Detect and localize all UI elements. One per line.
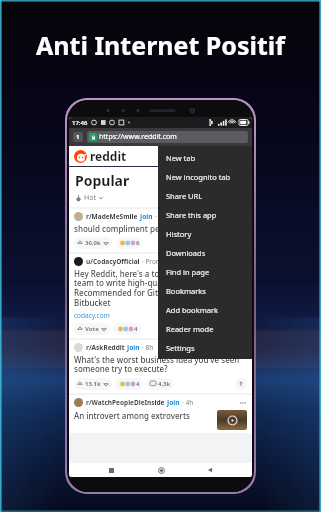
button[interactable]: Share <box>235 378 247 390</box>
button[interactable]: Vote <box>74 323 110 335</box>
staticText: 6 <box>136 239 140 247</box>
button[interactable]: Back <box>203 463 217 477</box>
staticText: r/MadeMeSmile <box>86 212 138 221</box>
staticText: should compliment people more <box>74 223 199 234</box>
button[interactable]: Downloads <box>158 243 252 262</box>
staticText: r/WatchPeopleDieInside <box>86 398 165 407</box>
staticText: r/AskReddit <box>86 343 125 352</box>
staticText: 4 <box>134 325 138 333</box>
button[interactable]: Join <box>167 398 180 407</box>
staticText: · 8h <box>142 343 154 352</box>
button[interactable]: Home <box>154 463 168 477</box>
button[interactable]: Hot <box>75 193 104 203</box>
button[interactable]: Add bookmark <box>158 300 252 319</box>
button[interactable]: Bookmarks <box>158 281 252 300</box>
staticText: · 7h <box>155 212 167 221</box>
staticText: u/CodacyOfficial <box>86 257 140 266</box>
staticText: 13.1k <box>85 380 101 388</box>
button[interactable]: codacy.com <box>74 311 110 320</box>
button[interactable]: More options <box>238 398 247 407</box>
button[interactable]: r/AskReddit <box>69 340 252 393</box>
button[interactable]: 13.1k <box>74 378 112 390</box>
button[interactable]: https://www.reddit.com <box>87 131 248 143</box>
button[interactable]: History <box>158 224 252 243</box>
staticText: New tab <box>166 153 196 163</box>
button[interactable]: Settings <box>158 338 252 357</box>
staticText: Anti Internet Positif <box>36 28 286 62</box>
button[interactable]: Recents <box>104 463 118 477</box>
button[interactable]: Share this app <box>158 205 252 224</box>
staticText: What's the worst business idea you've se… <box>74 354 240 375</box>
staticText: Downloads <box>166 248 206 258</box>
staticText: Share URL <box>166 191 203 201</box>
button[interactable]: 30.0k <box>74 237 112 249</box>
staticText: 30.0k <box>85 239 101 247</box>
staticText: Vote <box>85 325 99 333</box>
button[interactable]: Join <box>127 343 140 352</box>
staticText: Settings <box>166 343 195 353</box>
staticText: 17:46 <box>72 119 88 127</box>
staticText: · 4h <box>182 398 194 407</box>
staticText: Share this app <box>166 210 217 220</box>
button[interactable]: Reader mode <box>158 319 252 338</box>
button[interactable]: Join <box>140 212 153 221</box>
staticText: Add bookmark <box>166 305 218 315</box>
button[interactable]: r/MadeMeSmile <box>69 209 252 252</box>
staticText: 1 <box>76 133 80 141</box>
button[interactable]: 4 <box>114 323 141 335</box>
staticText: Hey Reddit, here's a tool for your team … <box>74 268 200 309</box>
staticText: · Promoted <box>142 257 176 266</box>
staticText: Find in page <box>166 267 210 277</box>
staticText: Popular <box>75 171 130 190</box>
staticText: New incognito tab <box>166 172 231 182</box>
staticText: Bookmarks <box>166 286 206 296</box>
button[interactable]: 1 <box>73 132 83 142</box>
button[interactable]: Find in page <box>158 262 252 281</box>
button[interactable]: New incognito tab <box>158 167 252 186</box>
staticText: 4.3k <box>158 380 171 388</box>
staticText: History <box>166 229 192 239</box>
button[interactable]: 6 <box>116 237 143 249</box>
button[interactable]: 4 <box>116 378 143 390</box>
staticText: https://www.reddit.com <box>99 132 177 142</box>
staticText: Reader mode <box>166 324 214 334</box>
staticText: 4 <box>136 380 140 388</box>
button[interactable]: Play video <box>217 410 247 430</box>
button[interactable]: 4.3k <box>147 378 174 390</box>
button[interactable]: u/CodacyOfficial <box>69 254 252 338</box>
button[interactable]: Share URL <box>158 186 252 205</box>
staticText: An introvert among extroverts <box>74 410 217 421</box>
staticText: Hot <box>84 193 96 203</box>
button[interactable]: New tab <box>158 148 252 167</box>
staticText: reddit <box>90 148 127 164</box>
